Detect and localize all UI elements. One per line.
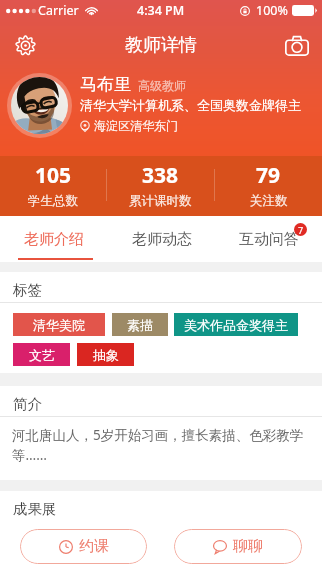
staticText: 老师动态	[132, 230, 192, 249]
staticText: 海淀区清华东门	[94, 118, 178, 133]
staticText: 4:34 PM	[137, 2, 185, 19]
staticText: 成果展	[13, 500, 57, 518]
staticText: 河北唐山人，5岁开始习画，擅长素描、色彩教学等……	[12, 426, 308, 464]
button[interactable]: 约课	[20, 529, 147, 564]
staticText: 素描	[127, 317, 153, 333]
staticText: 约课	[79, 537, 109, 556]
staticText: 简介	[13, 395, 42, 413]
staticText: 7	[298, 224, 304, 236]
staticText: 79	[256, 161, 281, 190]
button[interactable]: 老师介绍	[0, 216, 108, 262]
button[interactable]: 文艺	[13, 343, 70, 366]
staticText: 聊聊	[233, 537, 263, 556]
button[interactable]: 清华美院	[13, 313, 105, 336]
button[interactable]: Settings	[8, 28, 42, 62]
staticText: 100%	[256, 2, 288, 19]
staticText: 标签	[13, 281, 42, 299]
staticText: 338	[142, 161, 179, 190]
staticText: 高级教师	[138, 78, 186, 93]
staticText: 105	[35, 161, 72, 190]
button[interactable]: 素描	[112, 313, 168, 336]
staticText: 教师详情	[125, 34, 197, 57]
staticText: 清华美院	[33, 317, 85, 333]
button[interactable]: 聊聊	[174, 529, 302, 564]
button[interactable]: 抽象	[77, 343, 134, 366]
staticText: 互动问答	[239, 230, 299, 249]
button[interactable]: 互动问答	[215, 216, 322, 262]
staticText: Carrier	[38, 2, 79, 19]
staticText: 老师介绍	[24, 230, 84, 249]
staticText: 马布里	[80, 74, 131, 95]
staticText: 美术作品金奖得主	[184, 317, 288, 333]
staticText: 清华大学计算机系、全国奥数金牌得主	[80, 97, 301, 113]
staticText: 累计课时数	[129, 193, 192, 209]
staticText: 抽象	[93, 347, 119, 363]
staticText: 文艺	[29, 347, 55, 363]
button[interactable]: 美术作品金奖得主	[174, 313, 298, 336]
button[interactable]: 老师动态	[108, 216, 215, 262]
button[interactable]: Camera	[280, 28, 314, 62]
staticText: 学生总数	[28, 193, 78, 209]
staticText: 关注数	[250, 193, 288, 209]
